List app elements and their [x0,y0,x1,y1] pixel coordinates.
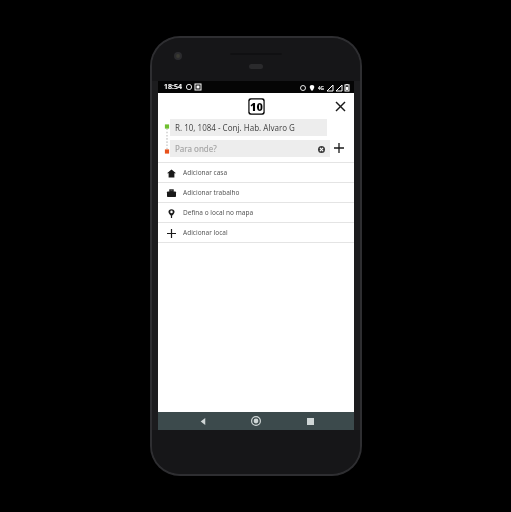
button[interactable]: Adicionar casa [158,163,354,182]
button[interactable]: Adicionar trabalho [158,183,354,202]
staticText: 18:54 [164,82,182,92]
button[interactable]: R. 10, 1084 - Conj. Hab. Alvaro G [170,119,327,136]
button[interactable]: Recentes [301,412,319,430]
staticText: Adicionar casa [183,168,228,177]
button[interactable]: Início [247,412,265,430]
staticText: 4G [318,85,324,91]
staticText: Adicionar local [183,228,228,237]
staticText: 10 [250,99,263,114]
button[interactable]: Defina o local no mapa [158,203,354,222]
staticText: R. 10, 1084 - Conj. Hab. Alvaro G [175,122,295,133]
staticText: Para onde? [175,143,217,154]
staticText: Adicionar trabalho [183,188,240,197]
button[interactable]: Limpar [316,144,326,154]
button[interactable]: Fechar [332,98,348,114]
staticText: Defina o local no mapa [183,208,254,217]
button[interactable]: Adicionar local [158,223,354,242]
button[interactable]: Voltar [194,412,212,430]
button[interactable]: Para onde? [170,140,330,157]
button[interactable]: Adicionar parada [330,139,348,157]
